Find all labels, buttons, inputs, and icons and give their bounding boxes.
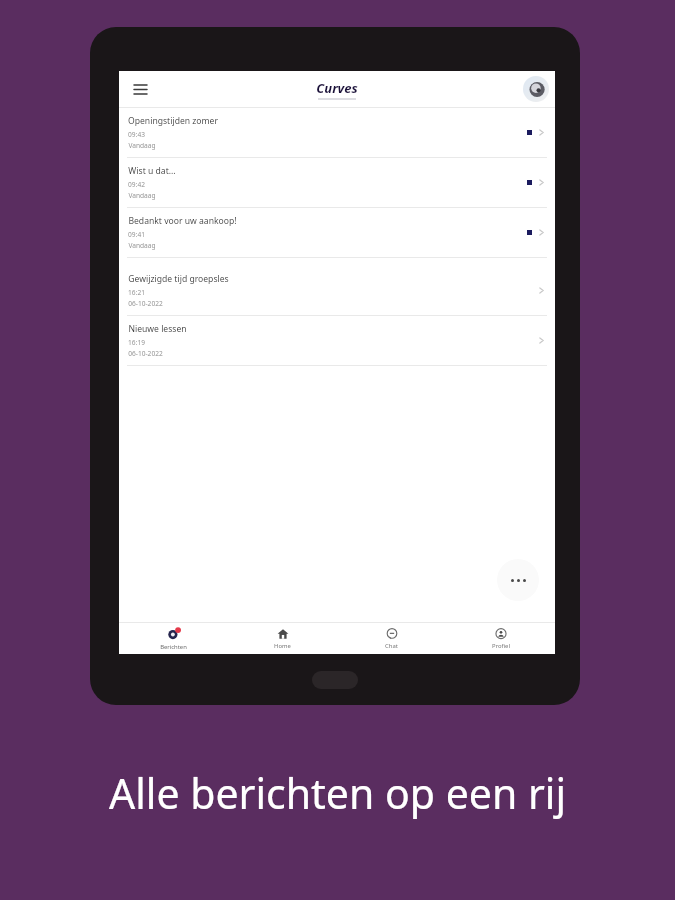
button[interactable]: Chat (337, 623, 446, 654)
staticText: Chat (385, 642, 398, 650)
staticText: Vandaag (128, 241, 156, 250)
button[interactable]: Menu (127, 76, 153, 102)
other: Home button (312, 671, 358, 689)
button[interactable]: Openingstijden zomer (119, 108, 555, 157)
staticText: Bedankt voor uw aankoop! (128, 215, 237, 227)
staticText: Berichten (160, 643, 187, 651)
button[interactable]: Gewijzigde tijd groepsles (119, 266, 555, 315)
staticText: Profiel (492, 642, 510, 650)
staticText: Wist u dat... (128, 165, 176, 177)
staticText: 16:21 (128, 288, 145, 297)
button[interactable]: Wist u dat... (119, 158, 555, 207)
button[interactable]: More options (497, 559, 539, 601)
staticText: 09:43 (128, 130, 145, 139)
button[interactable]: Nieuwe lessen (119, 316, 555, 365)
button[interactable]: Home (228, 623, 337, 654)
staticText: Curves (316, 79, 358, 97)
button[interactable]: Berichten (119, 623, 228, 654)
staticText: Gewijzigde tijd groepsles (128, 273, 229, 285)
button[interactable]: Profiel (446, 623, 555, 654)
staticText: Alle berichten op een rij (109, 765, 566, 821)
staticText: 06-10-2022 (128, 299, 163, 308)
staticText: Openingstijden zomer (128, 115, 218, 127)
button[interactable]: Profile picture (523, 76, 549, 102)
staticText: Home (274, 642, 291, 650)
staticText: 09:42 (128, 180, 145, 189)
staticText: 09:41 (128, 230, 145, 239)
staticText: 06-10-2022 (128, 349, 163, 358)
staticText: Vandaag (128, 141, 156, 150)
staticText: Vandaag (128, 191, 156, 200)
staticText: 16:19 (128, 338, 145, 347)
button[interactable]: Bedankt voor uw aankoop! (119, 208, 555, 257)
staticText: Nieuwe lessen (128, 323, 187, 335)
